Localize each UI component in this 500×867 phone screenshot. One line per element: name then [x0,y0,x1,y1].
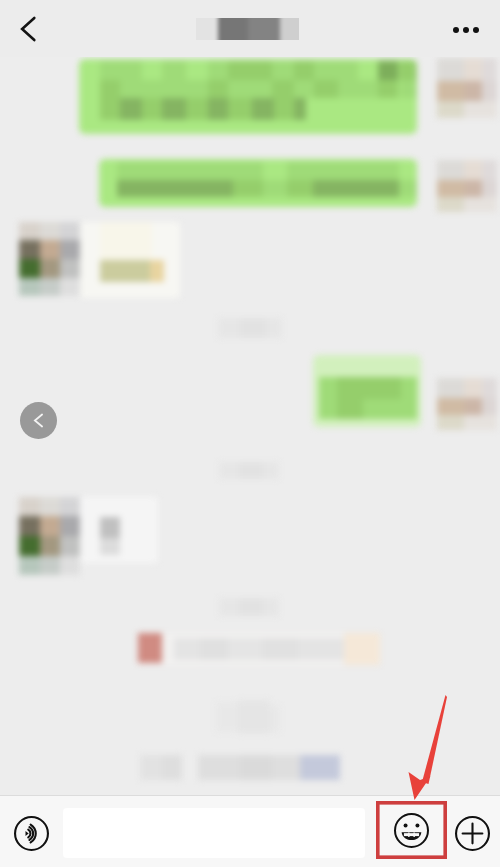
button[interactable] [80,497,158,563]
button[interactable] [19,497,80,575]
button[interactable]: Voice input [9,811,53,855]
button[interactable] [80,222,180,298]
button[interactable]: Emoji [376,801,447,859]
button[interactable] [313,355,421,427]
button[interactable]: More options [442,5,490,53]
button[interactable]: More functions [450,811,494,855]
button[interactable] [99,159,417,207]
button[interactable] [19,222,80,296]
button[interactable]: Back [4,5,52,53]
button[interactable] [79,59,417,134]
button[interactable]: Return to previous app [20,402,57,439]
